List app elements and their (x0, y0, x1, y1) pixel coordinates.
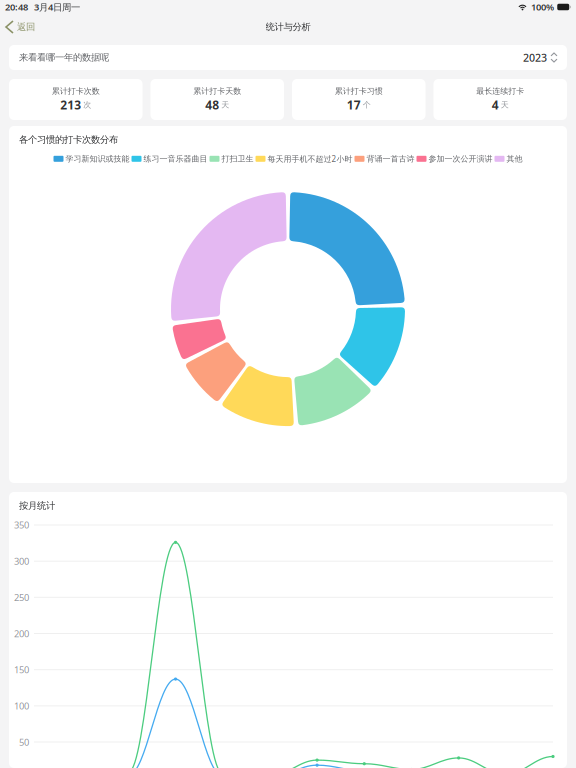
staticText: 统计与分析 (265, 21, 310, 33)
staticText: 213 (60, 97, 81, 113)
staticText: 其他 (506, 154, 522, 164)
staticText: 练习一音乐器曲目 (143, 154, 207, 164)
staticText: 350 (14, 519, 29, 531)
staticText: 17 (347, 97, 361, 113)
staticText: 打扫卫生 (221, 154, 253, 164)
staticText: 累计打卡习惯 (335, 86, 383, 96)
staticText: 按月统计 (19, 500, 55, 511)
staticText: 300 (14, 555, 29, 567)
staticText: 200 (14, 627, 29, 640)
staticText: 100 (14, 700, 29, 712)
staticText: 累计打卡次数 (52, 86, 100, 96)
staticText: 天 (501, 100, 509, 110)
staticText: 累计打卡天数 (193, 86, 241, 96)
staticText: 48 (205, 97, 219, 113)
staticText: 4 (492, 97, 499, 113)
staticText: 50 (19, 736, 29, 748)
staticText: 20:48 (5, 1, 28, 13)
button[interactable]: 来看看哪一年的数据呢 (9, 45, 567, 70)
staticText: 天 (221, 100, 229, 110)
staticText: 250 (14, 591, 29, 603)
staticText: 各个习惯的打卡次数分布 (19, 134, 118, 145)
staticText: 参加一次公开演讲 (428, 154, 492, 164)
staticText: 最长连续打卡 (476, 86, 524, 96)
button[interactable]: 返回 (0, 14, 41, 40)
staticText: 150 (14, 663, 29, 676)
staticText: 个 (363, 100, 371, 110)
staticText: 返回 (17, 21, 35, 33)
staticText: 3月4日周一 (34, 1, 80, 13)
staticText: 2023 (523, 50, 547, 65)
staticText: 每天用手机不超过2小时 (267, 153, 352, 164)
staticText: 次 (83, 100, 91, 110)
staticText: 100% (531, 1, 554, 13)
staticText: 来看看哪一年的数据呢 (19, 52, 109, 63)
staticText: 背诵一首古诗 (366, 154, 414, 164)
staticText: 学习新知识或技能 (65, 154, 129, 164)
